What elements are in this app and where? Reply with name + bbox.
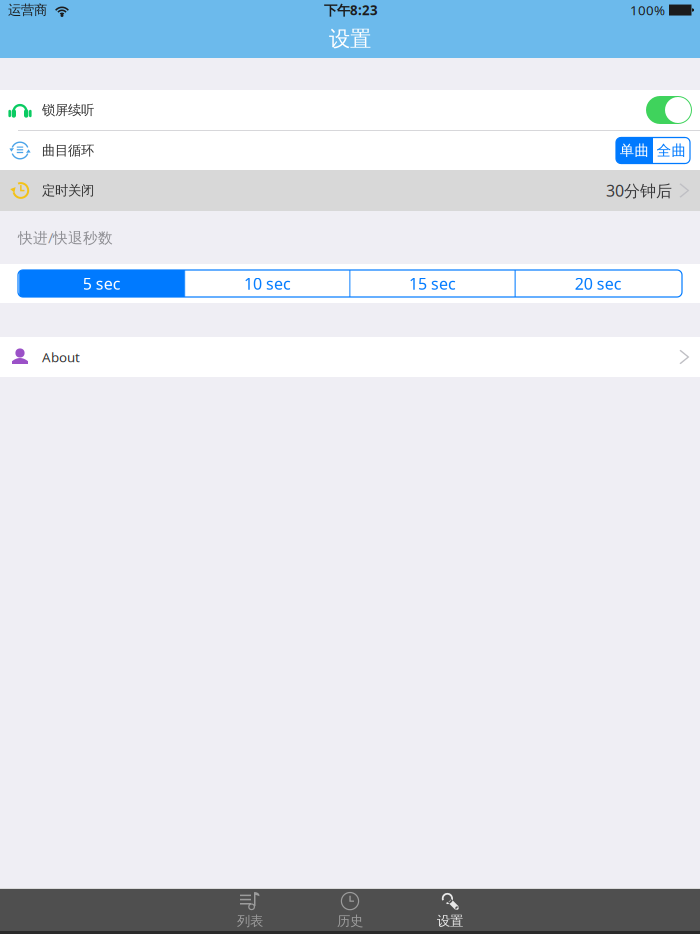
staticText: 5 sec: [83, 273, 121, 294]
staticText: 列表: [237, 913, 263, 929]
staticText: 100%: [630, 1, 665, 19]
button[interactable]: 单曲: [616, 137, 653, 163]
staticText: 设置: [329, 26, 371, 52]
staticText: 历史: [337, 913, 363, 929]
staticText: 定时关闭: [42, 182, 94, 199]
staticText: 设置: [437, 913, 463, 929]
staticText: 10 sec: [244, 273, 291, 294]
button[interactable]: 设置: [400, 888, 500, 932]
button[interactable]: 锁屏续听: [0, 90, 700, 130]
button[interactable]: 全曲: [653, 137, 690, 163]
button[interactable]: 20 sec: [516, 270, 681, 297]
staticText: 运营商: [8, 2, 47, 18]
button[interactable]: 10 sec: [185, 270, 349, 297]
button[interactable]: 历史: [300, 888, 400, 932]
staticText: 单曲: [619, 141, 649, 160]
button[interactable]: 5 sec: [19, 270, 184, 297]
staticText: About: [42, 348, 80, 366]
button[interactable]: 15 sec: [351, 270, 515, 297]
button[interactable]: 曲目循环: [0, 131, 700, 170]
button[interactable]: About: [0, 337, 700, 377]
staticText: 锁屏续听: [42, 102, 94, 118]
staticText: 下午8:23: [324, 1, 378, 19]
button[interactable]: 列表: [200, 888, 300, 932]
staticText: 30分钟后: [606, 180, 672, 201]
staticText: 15 sec: [409, 273, 456, 294]
staticText: 全曲: [656, 141, 686, 160]
staticText: 曲目循环: [42, 142, 94, 159]
button[interactable]: 定时关闭: [0, 170, 700, 211]
staticText: 快进/快退秒数: [18, 227, 113, 247]
staticText: 20 sec: [575, 273, 622, 294]
